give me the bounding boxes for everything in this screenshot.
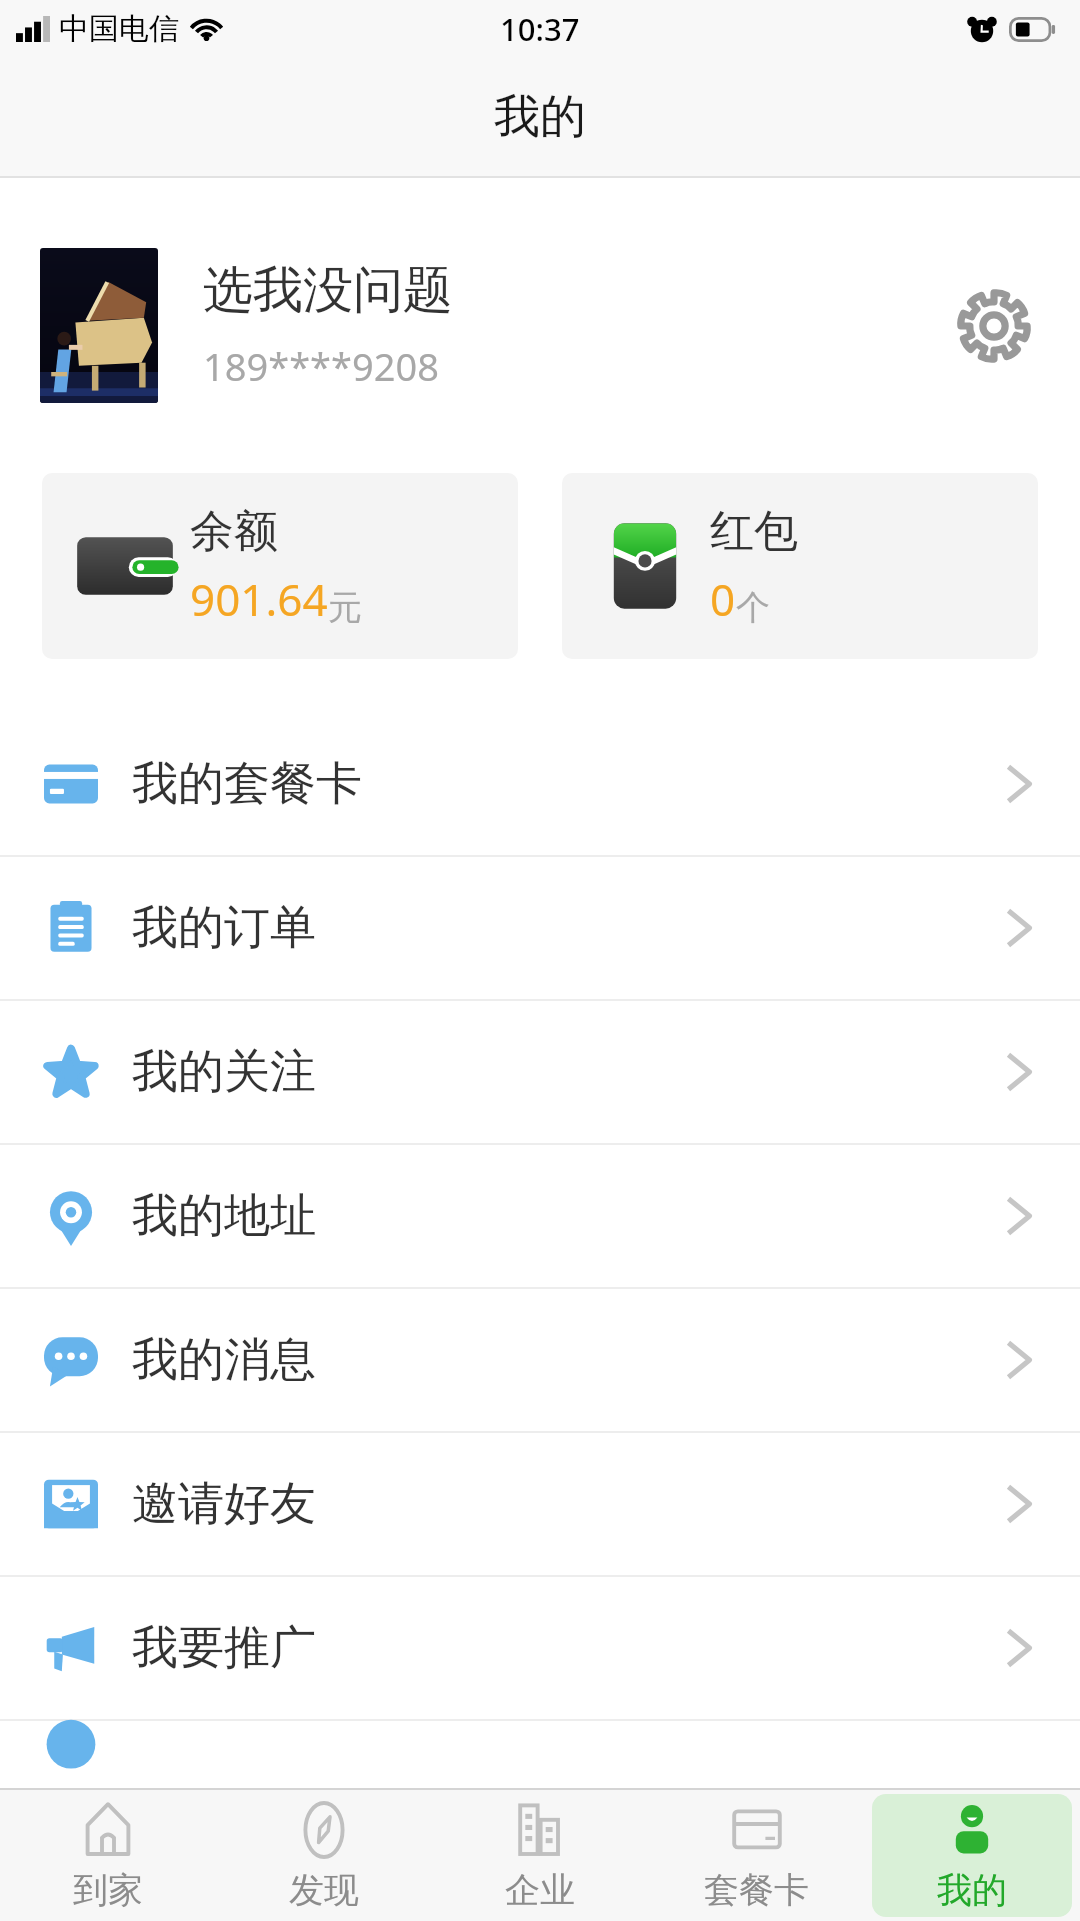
button[interactable]: 余额: [42, 473, 518, 659]
button[interactable]: Settings: [941, 273, 1046, 378]
staticText: 余额: [190, 504, 278, 559]
button[interactable]: 套餐卡: [656, 1794, 856, 1917]
button[interactable]: 我的地址: [0, 1145, 1080, 1287]
staticText: 我的订单: [132, 899, 316, 957]
staticText: 我的地址: [132, 1187, 316, 1245]
button[interactable]: 到家: [8, 1794, 208, 1917]
button[interactable]: 我的套餐卡: [0, 713, 1080, 855]
button[interactable]: 发现: [224, 1794, 424, 1917]
button[interactable]: 我要推广: [0, 1577, 1080, 1719]
staticText: 中国电信: [59, 10, 179, 48]
button[interactable]: 我的订单: [0, 857, 1080, 999]
staticText: 选我没问题: [203, 259, 453, 322]
button[interactable]: 我的: [872, 1794, 1072, 1917]
staticText: 901.64: [190, 569, 328, 629]
staticText: 10:37: [500, 8, 580, 50]
staticText: 个: [736, 586, 770, 629]
staticText: 元: [328, 586, 362, 629]
button[interactable]: 我的关注: [0, 1001, 1080, 1143]
button[interactable]: 企业: [440, 1794, 640, 1917]
button[interactable]: 红包: [562, 473, 1038, 659]
staticText: 我的关注: [132, 1043, 316, 1101]
staticText: 我的消息: [132, 1331, 316, 1389]
staticText: 我的套餐卡: [132, 755, 362, 813]
staticText: 套餐卡: [704, 1868, 809, 1912]
button[interactable]: [0, 1721, 1080, 1801]
staticText: 企业: [505, 1868, 575, 1912]
staticText: 红包: [710, 504, 798, 559]
staticText: 我的: [937, 1868, 1007, 1912]
button[interactable]: 我的消息: [0, 1289, 1080, 1431]
staticText: 到家: [73, 1868, 143, 1912]
staticText: 我要推广: [132, 1619, 316, 1677]
staticText: 发现: [289, 1868, 359, 1912]
button[interactable]: 选我没问题: [0, 178, 1080, 473]
staticText: 0: [710, 569, 736, 629]
staticText: 邀请好友: [132, 1475, 316, 1533]
staticText: 我的: [494, 88, 586, 146]
button[interactable]: 邀请好友: [0, 1433, 1080, 1575]
staticText: 189****9208: [203, 340, 439, 392]
